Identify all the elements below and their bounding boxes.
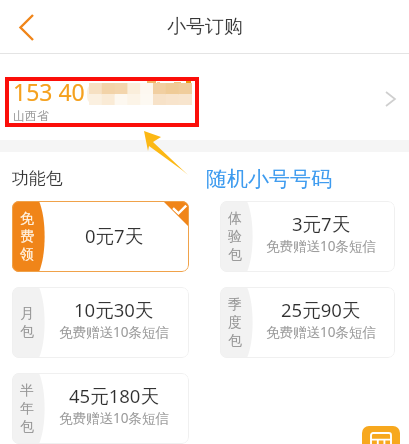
- staticText: 3元7天: [292, 211, 351, 236]
- staticText: 45元180天: [69, 383, 159, 408]
- staticText: 免费赠送10条短信: [59, 323, 169, 341]
- staticText: 153 40: [13, 76, 85, 107]
- button[interactable]: 体: [220, 201, 395, 272]
- staticText: 度: [228, 314, 242, 332]
- button[interactable]: 季: [220, 287, 395, 358]
- staticText: 免费赠送10条短信: [59, 409, 169, 427]
- staticText: 体: [228, 210, 242, 228]
- staticText: 验: [228, 228, 242, 246]
- staticText: 0元7天: [85, 223, 144, 248]
- staticText: 季: [228, 296, 242, 314]
- staticText: 包: [20, 418, 34, 436]
- staticText: 免费赠送10条短信: [266, 237, 376, 255]
- staticText: 25元90天: [281, 297, 361, 322]
- staticText: 免: [20, 210, 34, 228]
- button[interactable]: Keyboard: [362, 426, 400, 444]
- button[interactable]: 153 40: [0, 55, 409, 140]
- staticText: 年: [20, 400, 34, 418]
- staticText: 费: [20, 228, 34, 246]
- staticText: 领: [20, 246, 34, 264]
- staticText: 包: [20, 323, 34, 341]
- staticText: 小号订购: [167, 15, 243, 39]
- staticText: 半: [20, 382, 34, 400]
- staticText: 免费赠送10条短信: [266, 323, 376, 341]
- staticText: 月: [20, 305, 34, 323]
- staticText: 10元30天: [74, 297, 154, 322]
- staticText: 随机小号号码: [206, 166, 332, 192]
- button[interactable]: 免: [12, 201, 189, 272]
- button[interactable]: Back: [0, 0, 52, 54]
- button[interactable]: 半: [12, 373, 189, 444]
- button[interactable]: 月: [12, 287, 189, 358]
- staticText: 包: [228, 246, 242, 264]
- staticText: 山西省: [13, 108, 49, 123]
- staticText: 功能包: [12, 168, 63, 189]
- staticText: 包: [228, 332, 242, 350]
